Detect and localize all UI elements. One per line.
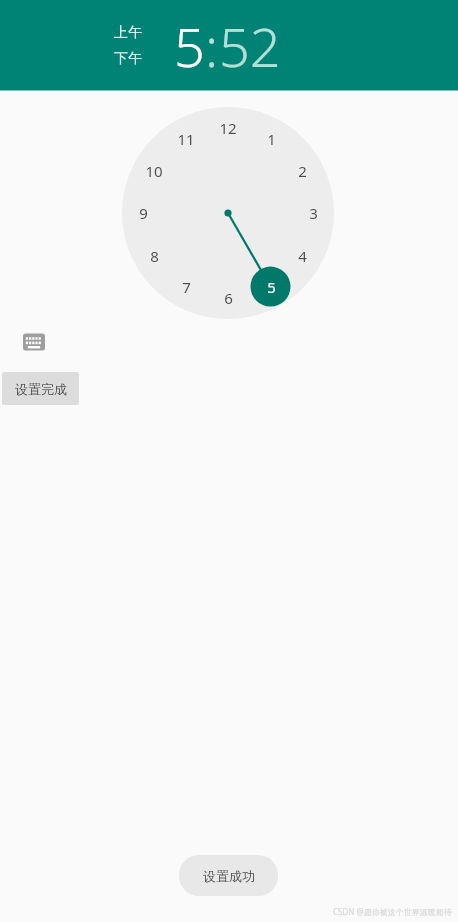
button[interactable]: 6	[215, 287, 241, 309]
button[interactable]: 5	[258, 276, 284, 298]
staticText: 52	[219, 9, 281, 83]
staticText: 上午	[114, 24, 142, 42]
button[interactable]: 上午	[112, 23, 144, 43]
button[interactable]: 5	[174, 9, 205, 83]
button[interactable]: Switch to text input mode	[23, 332, 45, 352]
staticText: :	[205, 9, 219, 83]
staticText: 1	[267, 129, 276, 149]
staticText: 设置成功	[203, 868, 255, 884]
staticText: 11	[177, 129, 195, 149]
staticText: 10	[145, 161, 163, 181]
button[interactable]: 7	[173, 276, 199, 298]
button[interactable]: 52	[219, 9, 281, 83]
staticText: 7	[182, 277, 191, 297]
button[interactable]: 3	[300, 202, 326, 224]
button[interactable]: 设置完成	[2, 372, 79, 405]
staticText: 4	[298, 246, 307, 266]
staticText: 8	[150, 246, 159, 266]
button[interactable]: 12	[215, 117, 241, 139]
button[interactable]: 11	[173, 128, 199, 150]
button[interactable]: 9	[130, 202, 156, 224]
button[interactable]: 下午	[112, 49, 144, 69]
staticText: 6	[224, 288, 233, 308]
staticText: 12	[219, 118, 237, 138]
staticText: 下午	[114, 50, 142, 68]
staticText: 9	[139, 203, 148, 223]
button[interactable]: 设置成功	[179, 855, 278, 896]
staticText: 5	[267, 277, 276, 297]
staticText: 3	[309, 203, 318, 223]
button[interactable]: 8	[141, 245, 167, 267]
button[interactable]: 10	[141, 160, 167, 182]
staticText: 5	[174, 9, 205, 83]
staticText: 2	[298, 161, 307, 181]
staticText: CSDN @愿你被这个世界温暖相待	[333, 906, 452, 917]
button[interactable]: 1	[258, 128, 284, 150]
button[interactable]: 2	[289, 160, 315, 182]
button[interactable]: 4	[289, 245, 315, 267]
staticText: 设置完成	[15, 381, 67, 397]
button[interactable]: Clock face, 5 o'clock selected	[122, 107, 334, 319]
